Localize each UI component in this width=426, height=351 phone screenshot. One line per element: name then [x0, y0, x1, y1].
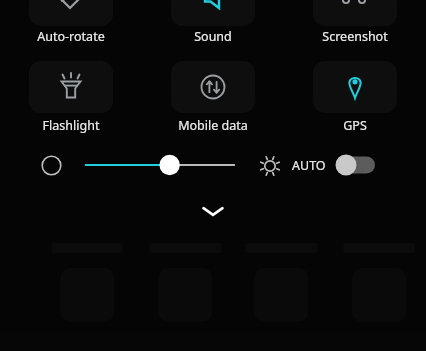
button[interactable]: Auto-rotate — [0, 0, 142, 52]
button[interactable]: Brightness slider — [78, 149, 238, 181]
button[interactable]: GPS — [284, 52, 426, 141]
staticText: Flashlight — [0, 117, 142, 134]
staticText: Mobile data — [142, 117, 284, 134]
button[interactable]: Maximum brightness — [258, 154, 282, 178]
staticText: Screenshot — [284, 28, 426, 45]
staticText: GPS — [284, 117, 426, 134]
button[interactable]: Mobile data — [142, 52, 284, 141]
button[interactable]: Flashlight — [0, 52, 142, 141]
other: Expand quick settings — [196, 194, 230, 228]
button[interactable]: Minimum brightness — [41, 155, 62, 176]
staticText: AUTO — [292, 157, 326, 174]
staticText: Sound — [142, 28, 284, 45]
button[interactable]: Expand quick settings — [0, 189, 426, 233]
button[interactable]: Screenshot — [284, 0, 426, 52]
button[interactable]: Sound — [142, 0, 284, 52]
staticText: Auto-rotate — [0, 28, 142, 45]
button[interactable]: AUTO — [292, 149, 375, 181]
